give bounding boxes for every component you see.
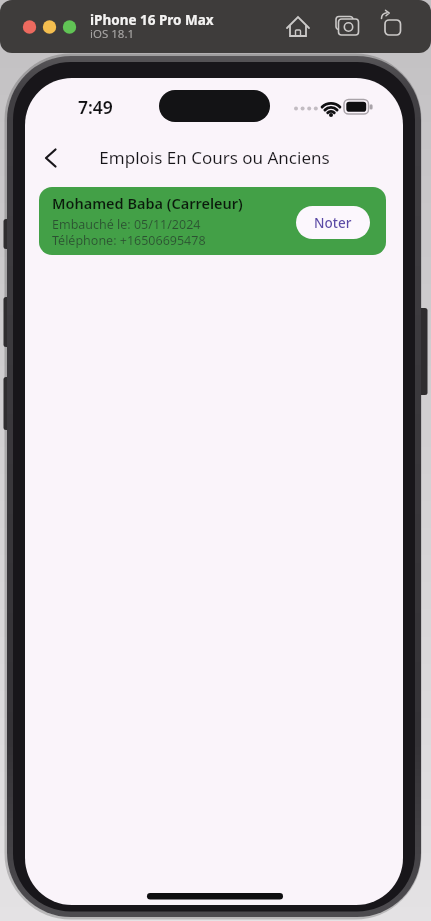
staticText: iOS 18.1	[90, 26, 135, 42]
staticText: 7:49	[78, 95, 113, 119]
button[interactable]	[283, 12, 313, 42]
staticText: Mohamed Baba (Carreleur)	[52, 193, 243, 213]
staticText: Embauché le: 05/11/2024	[52, 216, 201, 233]
button[interactable]: Noter	[296, 206, 370, 239]
button[interactable]	[332, 12, 362, 42]
staticText: Emplois En Cours ou Anciens	[99, 146, 330, 169]
staticText: Téléphone: +16506695478	[52, 232, 206, 249]
button[interactable]: Mohamed Baba (Carreleur)	[39, 187, 386, 255]
button[interactable]	[377, 12, 407, 42]
staticText: Noter	[314, 214, 352, 232]
staticText: iPhone 16 Pro Max	[90, 11, 214, 29]
button[interactable]	[35, 140, 69, 174]
